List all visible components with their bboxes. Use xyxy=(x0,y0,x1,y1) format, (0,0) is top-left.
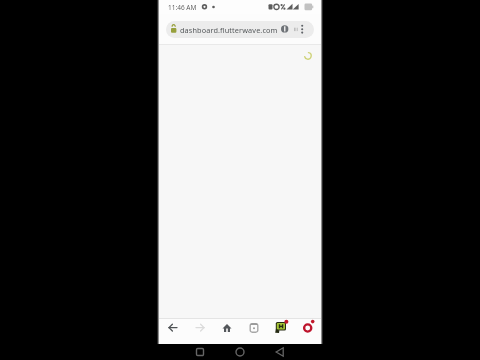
button[interactable] xyxy=(260,344,300,360)
button[interactable] xyxy=(213,318,240,344)
button[interactable] xyxy=(180,344,220,360)
button[interactable] xyxy=(294,318,321,344)
button[interactable] xyxy=(267,318,294,344)
button[interactable] xyxy=(186,318,213,344)
button[interactable]: dashboard.flutterwave.com xyxy=(166,21,314,38)
button[interactable] xyxy=(220,344,260,360)
staticText: dashboard.flutterwave.com xyxy=(180,25,278,35)
staticText: 11:46 AM xyxy=(168,3,197,12)
button[interactable] xyxy=(240,318,267,344)
button[interactable] xyxy=(159,318,186,344)
